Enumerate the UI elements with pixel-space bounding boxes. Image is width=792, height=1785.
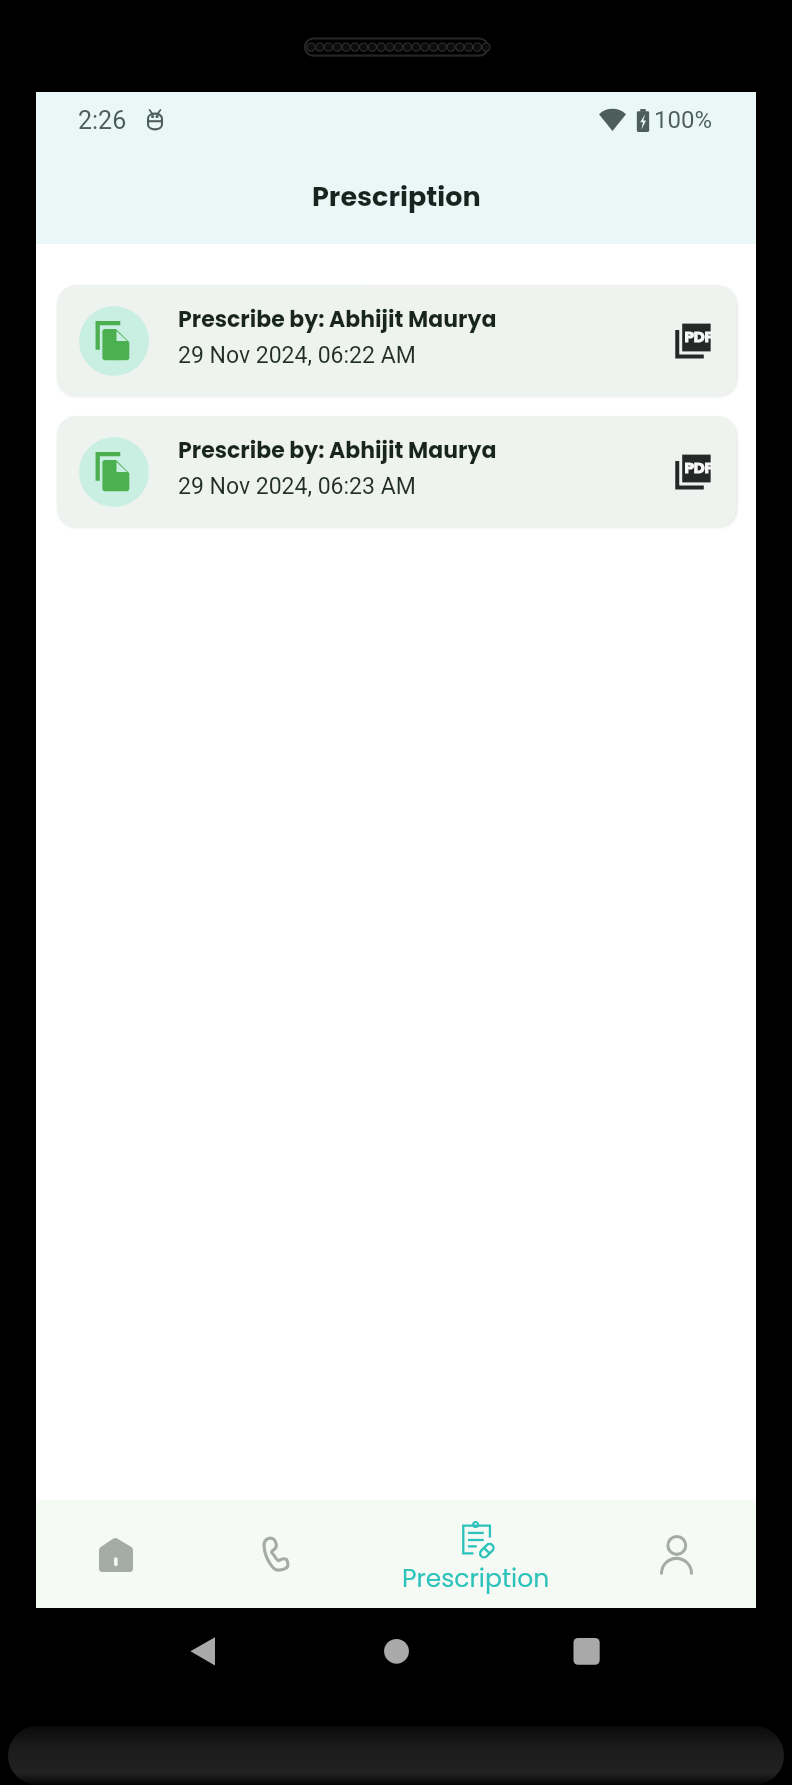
staticText: 29 Nov 2024, 06:22 AM [178, 342, 416, 369]
staticText: PDF [684, 329, 713, 345]
button[interactable]: Prescribe by: Abhijit Maurya [57, 285, 736, 396]
staticText: Prescription [402, 1561, 550, 1596]
button[interactable]: Prescription [356, 1500, 596, 1608]
button[interactable]: Home [36, 1500, 196, 1608]
button[interactable]: Calls [196, 1500, 356, 1608]
button[interactable]: Open PDF [671, 319, 715, 363]
staticText: 100% [654, 106, 713, 134]
staticText: 29 Nov 2024, 06:23 AM [178, 473, 416, 500]
staticText: Prescribe by: Abhijit Maurya [178, 435, 497, 466]
button[interactable]: Open PDF [671, 450, 715, 494]
staticText: Prescription [312, 178, 481, 216]
staticText: PDF [684, 460, 713, 476]
staticText: Prescribe by: Abhijit Maurya [178, 304, 497, 335]
button[interactable]: Prescribe by: Abhijit Maurya [57, 416, 736, 527]
button[interactable]: Profile [596, 1500, 756, 1608]
staticText: 2:26 [78, 106, 127, 135]
